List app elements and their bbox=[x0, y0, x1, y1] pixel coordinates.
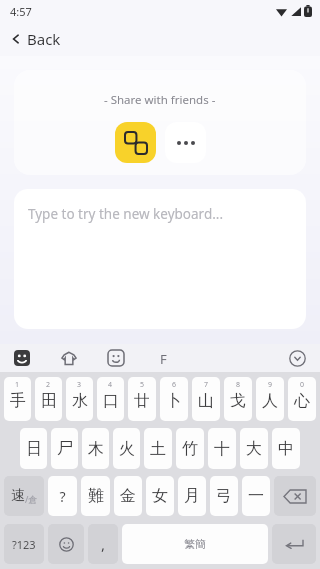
staticText: 人 bbox=[262, 391, 278, 411]
button[interactable]: 9 bbox=[256, 377, 284, 421]
button[interactable]: 月 bbox=[178, 476, 206, 516]
staticText: 木 bbox=[88, 439, 104, 459]
button[interactable]: 一 bbox=[242, 476, 270, 516]
staticText: 尸 bbox=[57, 439, 73, 459]
staticText: 難 bbox=[88, 486, 104, 506]
button[interactable]: Share bbox=[115, 122, 156, 163]
button[interactable]: 弓 bbox=[210, 476, 238, 516]
button[interactable]: Numbers and symbols bbox=[4, 524, 44, 564]
button[interactable]: 1 bbox=[4, 377, 31, 421]
staticText: 繁簡 bbox=[184, 537, 206, 551]
staticText: 中 bbox=[278, 439, 294, 459]
staticText: - Share with friends - bbox=[104, 92, 216, 108]
staticText: 4 bbox=[108, 380, 113, 390]
button[interactable]: 難 bbox=[81, 476, 110, 516]
button[interactable]: Backspace bbox=[274, 476, 316, 516]
button[interactable]: Font bbox=[155, 350, 171, 366]
button[interactable]: Sticker face bbox=[108, 350, 124, 366]
staticText: 十 bbox=[214, 439, 230, 459]
staticText: 田 bbox=[41, 391, 57, 411]
button[interactable]: 火 bbox=[113, 428, 140, 469]
staticText: F bbox=[160, 350, 167, 366]
staticText: Back bbox=[27, 29, 61, 49]
button[interactable]: Input mode bbox=[4, 476, 44, 516]
button[interactable]: 中 bbox=[272, 428, 300, 469]
staticText: 女 bbox=[152, 486, 168, 506]
button[interactable]: More options bbox=[165, 122, 206, 163]
staticText: , bbox=[101, 534, 106, 554]
staticText: 土 bbox=[150, 439, 166, 459]
button[interactable]: 7 bbox=[192, 377, 220, 421]
staticText: ? bbox=[59, 487, 66, 506]
button[interactable]: 女 bbox=[146, 476, 174, 516]
staticText: 水 bbox=[72, 391, 88, 411]
staticText: 口 bbox=[103, 391, 119, 411]
staticText: 弓 bbox=[216, 486, 232, 506]
staticText: 2 bbox=[46, 380, 51, 390]
staticText: 9 bbox=[268, 380, 273, 390]
staticText: 金 bbox=[120, 486, 136, 506]
staticText: 7 bbox=[204, 380, 209, 390]
staticText: 廿 bbox=[134, 391, 150, 411]
button[interactable]: Emoji bbox=[14, 350, 30, 366]
button[interactable]: Emoji bbox=[48, 524, 84, 564]
staticText: 5 bbox=[140, 380, 145, 390]
staticText: 3 bbox=[77, 380, 82, 390]
button[interactable]: Back bbox=[0, 22, 320, 56]
staticText: ?123 bbox=[12, 537, 36, 552]
staticText: Type to try the new keyboard... bbox=[28, 205, 224, 223]
staticText: 大 bbox=[246, 439, 262, 459]
button[interactable]: 大 bbox=[240, 428, 268, 469]
button[interactable]: 十 bbox=[208, 428, 236, 469]
staticText: /倉 bbox=[25, 493, 38, 505]
button[interactable]: 木 bbox=[82, 428, 109, 469]
button[interactable]: Comma bbox=[88, 524, 118, 564]
button[interactable]: 竹 bbox=[176, 428, 204, 469]
button[interactable]: 6 bbox=[160, 377, 188, 421]
staticText: 6 bbox=[172, 380, 177, 390]
button[interactable]: 2 bbox=[35, 377, 62, 421]
button[interactable]: Space bbox=[122, 524, 268, 564]
button[interactable]: 尸 bbox=[51, 428, 78, 469]
staticText: 山 bbox=[198, 391, 214, 411]
button[interactable]: 8 bbox=[224, 377, 252, 421]
button[interactable]: 4 bbox=[97, 377, 124, 421]
staticText: 戈 bbox=[230, 391, 246, 411]
button[interactable]: 土 bbox=[144, 428, 172, 469]
staticText: 手 bbox=[10, 391, 26, 411]
button[interactable]: Collapse keyboard bbox=[289, 350, 306, 367]
staticText: 卜 bbox=[166, 391, 182, 411]
button[interactable]: Type to try the new keyboard... bbox=[14, 189, 306, 329]
button[interactable]: ? bbox=[48, 476, 77, 516]
button[interactable]: 0 bbox=[288, 377, 316, 421]
staticText: 0 bbox=[300, 380, 305, 390]
button[interactable]: 金 bbox=[114, 476, 142, 516]
staticText: 速 bbox=[11, 487, 25, 505]
staticText: 火 bbox=[119, 439, 135, 459]
staticText: 4:57 bbox=[10, 4, 32, 19]
staticText: 月 bbox=[184, 486, 200, 506]
staticText: 心 bbox=[294, 391, 310, 411]
staticText: 1 bbox=[15, 380, 20, 390]
button[interactable]: 5 bbox=[128, 377, 156, 421]
button[interactable]: Stickers bbox=[61, 350, 77, 366]
staticText: 竹 bbox=[182, 439, 198, 459]
button[interactable]: Enter bbox=[272, 524, 316, 564]
staticText: 8 bbox=[236, 380, 241, 390]
staticText: 日 bbox=[26, 439, 42, 459]
staticText: 一 bbox=[248, 486, 264, 506]
button[interactable]: 3 bbox=[66, 377, 93, 421]
button[interactable]: 日 bbox=[20, 428, 47, 469]
